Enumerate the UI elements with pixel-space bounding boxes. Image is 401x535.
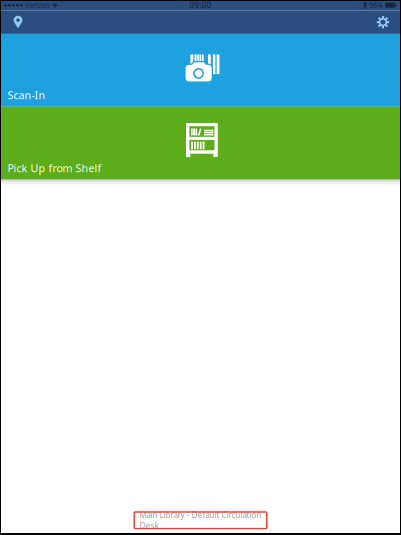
button[interactable]: Scan-In: [0, 34, 401, 107]
staticText: Pick Up from Shelf: [7, 161, 101, 175]
staticText: Scan-In: [7, 88, 45, 102]
staticText: 96%: [369, 1, 383, 10]
button[interactable]: Pick Up from Shelf: [0, 107, 401, 180]
staticText: Verizon: [25, 1, 49, 10]
button[interactable]: Settings: [370, 11, 396, 33]
staticText: Main Library - Default Circulation Desk: [139, 510, 261, 531]
button[interactable]: Location: [5, 11, 31, 33]
staticText: 09:00: [189, 0, 211, 10]
button[interactable]: Main Library - Default Circulation Desk: [134, 512, 267, 529]
